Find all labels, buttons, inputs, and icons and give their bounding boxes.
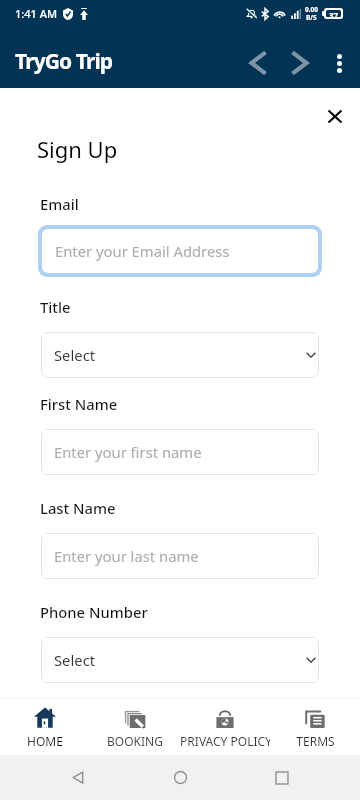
button[interactable]: Back (227, 41, 271, 85)
staticText: First Name (40, 394, 118, 414)
button[interactable]: Enter your first name (41, 429, 319, 475)
button[interactable]: Back (56, 755, 101, 800)
button[interactable]: Forward (271, 41, 315, 85)
staticText: PRIVACY POLICY (180, 733, 270, 749)
button[interactable]: PRIVACY POLICY (180, 706, 270, 749)
staticText: HOME (27, 733, 63, 749)
button[interactable]: BOOKING (90, 706, 180, 749)
staticText: Enter your Email Address (55, 241, 230, 261)
staticText: B/S (306, 13, 317, 22)
button[interactable]: More options (315, 41, 359, 85)
button[interactable]: HOME (0, 706, 90, 749)
staticText: 1:41 AM (15, 6, 58, 21)
button[interactable]: TERMS (270, 706, 360, 749)
staticText: 37 (329, 10, 339, 17)
button[interactable]: Recents (259, 755, 304, 800)
staticText: Phone Number (40, 602, 148, 622)
staticText: Title (40, 297, 71, 317)
button[interactable]: Enter your last name (41, 533, 319, 579)
staticText: Sign Up (37, 134, 118, 164)
button[interactable]: Home (158, 755, 203, 800)
staticText: TERMS (296, 733, 335, 749)
staticText: Select (54, 345, 96, 365)
staticText: 0.00 (305, 5, 318, 14)
staticText: TryGo Trip (15, 47, 113, 76)
staticText: Email (40, 194, 79, 214)
staticText: Last Name (40, 498, 116, 518)
staticText: Enter your first name (54, 442, 202, 462)
staticText: Select (54, 650, 96, 670)
button[interactable]: Select (41, 332, 319, 378)
staticText: BOOKING (107, 733, 163, 749)
staticText: Enter your last name (54, 546, 199, 566)
button[interactable]: Close (320, 101, 350, 131)
button[interactable]: Enter your Email Address (42, 229, 318, 273)
button[interactable]: Select (41, 637, 319, 683)
